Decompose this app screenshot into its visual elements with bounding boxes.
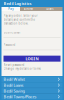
button[interactable]: Airtime [20, 7, 37, 11]
staticText: Loans [46, 7, 53, 11]
button[interactable]: LOGIN [3, 56, 60, 62]
button[interactable]: Pay [1, 7, 20, 11]
button[interactable]: Bedil Towns/Places [1, 94, 62, 99]
staticText: Bedil Loans [3, 82, 23, 88]
staticText: Pay any order. Enter your [3, 14, 37, 17]
staticText: Password [3, 43, 15, 47]
staticText: Bedil Logistics [3, 1, 31, 6]
staticText: details and confirm the [3, 18, 35, 21]
staticText: Pay [8, 7, 13, 11]
staticText: Bedil Towns/Places [3, 94, 36, 99]
staticText: Reset password [3, 63, 24, 67]
button[interactable]: Bedil Wallet [1, 77, 62, 82]
staticText: Businessman [3, 31, 20, 34]
staticText: transaction below. [3, 22, 28, 25]
staticText: Change my details or terms [3, 67, 40, 70]
staticText: Airtime [23, 7, 33, 11]
button[interactable]: Bedil Loans [1, 82, 62, 88]
button[interactable]: Bedil Saving [1, 88, 62, 94]
staticText: Bedil Saving [3, 88, 24, 93]
staticText: LOGIN [25, 56, 38, 61]
button[interactable]: Loans [37, 7, 62, 11]
staticText: Bedil Wallet [3, 77, 24, 82]
